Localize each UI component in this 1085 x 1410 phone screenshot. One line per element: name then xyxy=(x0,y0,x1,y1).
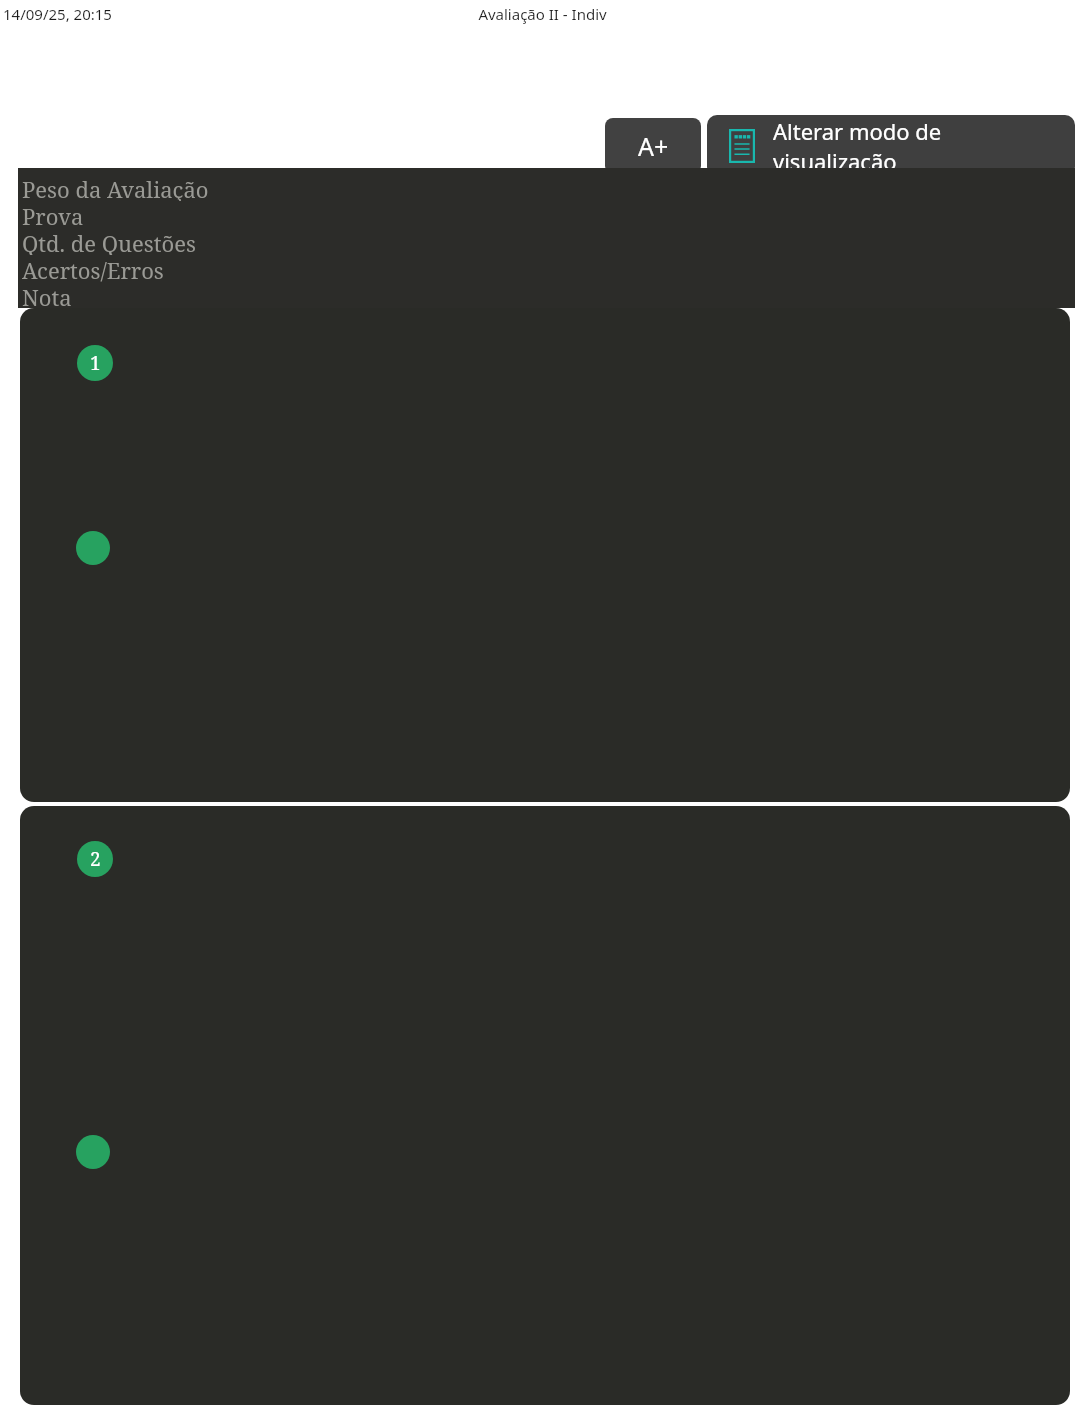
staticText: Nota xyxy=(22,282,72,308)
other: Alterar modo de visualização xyxy=(729,129,755,163)
button[interactable]: 1 xyxy=(20,308,1070,802)
button[interactable]: Alterar modo de visualização xyxy=(707,115,1075,177)
staticText: 14/09/25, 20:15 xyxy=(3,4,112,24)
button[interactable]: A+ xyxy=(605,118,701,174)
staticText: Qtd. de Questões xyxy=(22,228,196,255)
staticText: 1 xyxy=(90,350,101,376)
staticText: A+ xyxy=(638,129,669,163)
staticText: Acertos/Erros xyxy=(22,255,164,282)
staticText: Prova xyxy=(22,201,84,228)
staticText: Alterar modo de visualização xyxy=(773,116,1059,176)
staticText: Peso da Avaliação xyxy=(22,174,209,201)
staticText: 2 xyxy=(90,846,101,872)
staticText: Avaliação II - Indiv xyxy=(0,4,1085,24)
button[interactable]: 2 xyxy=(20,806,1070,1405)
